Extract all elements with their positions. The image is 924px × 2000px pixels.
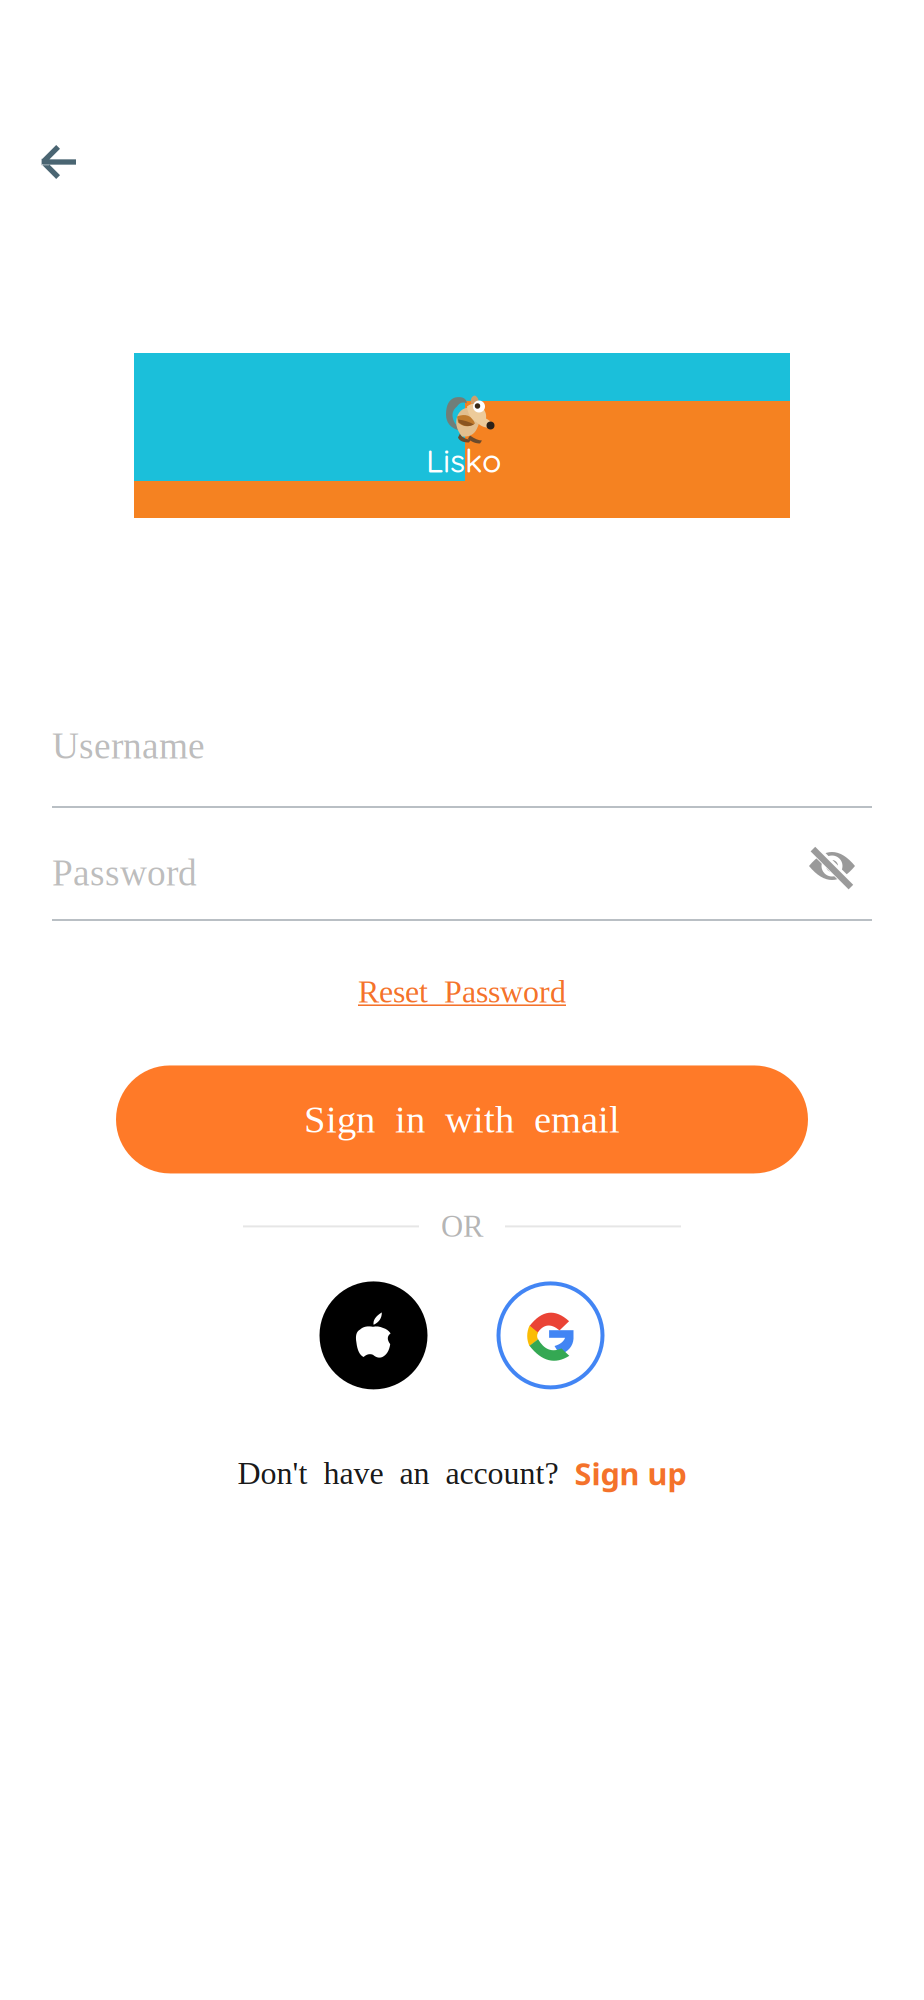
staticText: Don't have an account? [237,1456,558,1491]
button[interactable]: Sign in with Apple [319,1281,427,1389]
button[interactable]: Sign in with Google [496,1281,604,1389]
staticText: Reset Password [358,974,566,1009]
staticText: Sign up [574,1452,686,1494]
button[interactable]: Back [0,123,101,201]
staticText: Password [52,852,197,894]
button[interactable]: Sign in with email [116,1065,808,1173]
staticText: Sign in with email [304,1098,620,1141]
staticText: Lisko [426,440,502,480]
button[interactable]: Show password [806,849,872,897]
staticText: OR [441,1209,483,1243]
staticText: Username [52,725,205,767]
button[interactable]: Sign up [574,1452,686,1494]
button[interactable]: Reset Password [358,974,566,1009]
